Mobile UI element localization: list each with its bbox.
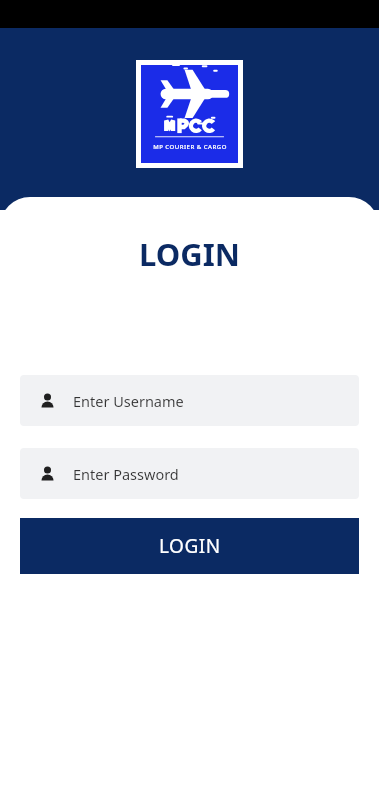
staticText: Enter Password <box>73 464 179 484</box>
staticText: Enter Username <box>73 391 184 411</box>
staticText: MP COURIER & CARGO <box>153 143 227 151</box>
button[interactable]: LOGIN <box>20 518 359 574</box>
other: MPCC MP Courier and Cargo logo <box>141 65 238 163</box>
button[interactable]: Enter Password <box>20 448 359 499</box>
button[interactable]: Enter Username <box>20 375 359 426</box>
staticText: LOGIN <box>159 533 221 559</box>
staticText: LOGIN <box>0 233 379 275</box>
